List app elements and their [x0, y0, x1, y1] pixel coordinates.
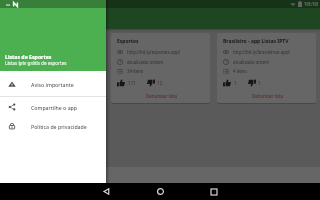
button[interactable]: Aviso importante: [0, 75, 106, 93]
staticText: atualizado ontem: [127, 59, 164, 65]
button[interactable]: Back: [93, 183, 119, 200]
staticText: atualizado ontem: [22, 59, 59, 65]
staticText: 9: [50, 80, 53, 86]
staticText: Denunciar lista: [223, 93, 312, 99]
staticText: http://bit.ly/brasileirao-appl: [233, 49, 290, 55]
staticText: Aviso importante: [31, 81, 74, 88]
staticText: 20 itens: [22, 68, 39, 74]
staticText: Brasileiro - app Listas IPTV: [223, 38, 289, 45]
staticText: Esportes: [117, 38, 139, 45]
staticText: 12: [157, 80, 163, 86]
staticText: Denunciar lista: [117, 93, 206, 99]
button[interactable]: Futebol: [6, 33, 104, 103]
staticText: 34 itens: [127, 68, 144, 74]
staticText: Denunciar lista: [12, 93, 100, 99]
staticText: 111: [128, 80, 136, 86]
button[interactable]: Home: [147, 183, 173, 200]
button[interactable]: Esportes: [111, 33, 210, 103]
staticText: http://bit.ly/esportes-appl: [127, 49, 180, 55]
button[interactable]: Recents: [201, 183, 227, 200]
staticText: Política de privacidade: [31, 123, 87, 130]
staticText: 10:16: [304, 0, 319, 8]
button[interactable]: Brasileiro - app Listas IPTV: [217, 33, 316, 103]
staticText: 1: [234, 80, 237, 86]
staticText: Listas iptv grátis de esportes: [5, 60, 67, 66]
button[interactable]: Política de privacidade: [0, 117, 106, 135]
staticText: atualizado ontem: [233, 59, 270, 65]
staticText: Listas de Esportes: [5, 53, 52, 60]
staticText: 1: [258, 80, 261, 86]
staticText: Compartilhe o app: [31, 104, 78, 111]
button[interactable]: Compartilhe o app: [0, 98, 106, 116]
staticText: 4 itens: [233, 68, 247, 74]
